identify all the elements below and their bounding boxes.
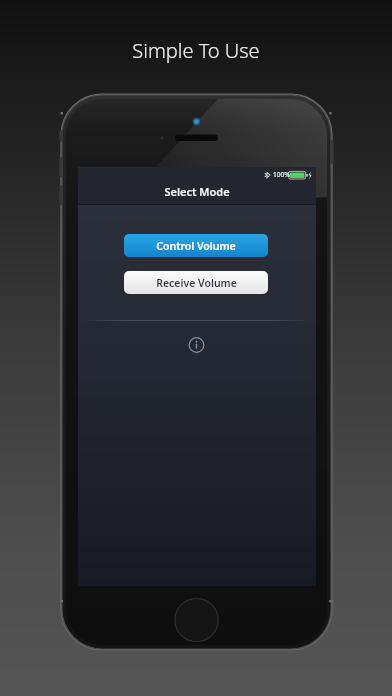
staticText: 100% — [273, 170, 290, 179]
button[interactable]: Information — [183, 332, 210, 359]
staticText: Control Volume — [156, 239, 236, 253]
staticText: Simple To Use — [132, 37, 260, 64]
staticText: Receive Volume — [156, 276, 237, 290]
button[interactable]: Control Volume — [124, 234, 268, 257]
staticText: Select Mode — [164, 184, 230, 199]
button[interactable]: Receive Volume — [124, 271, 268, 294]
